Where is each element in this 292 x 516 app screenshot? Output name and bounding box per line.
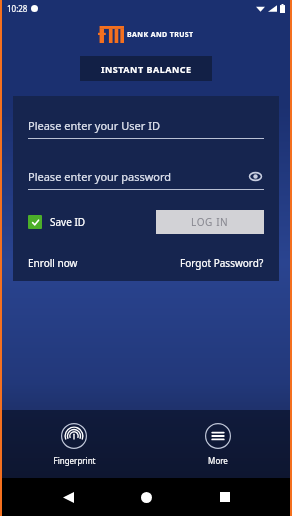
button[interactable]: Recent apps <box>212 484 238 510</box>
staticText: 10:28 <box>7 3 28 14</box>
button[interactable]: Home <box>133 484 159 510</box>
button[interactable]: Back <box>55 484 81 510</box>
button[interactable]: More options <box>146 410 290 478</box>
staticText: Enroll now <box>28 256 78 270</box>
button[interactable]: Forgot Password? <box>180 256 264 270</box>
staticText: Please enter your password <box>28 169 246 184</box>
button[interactable]: INSTANT BALANCE <box>80 56 212 81</box>
button[interactable]: Please enter your User ID <box>28 118 264 139</box>
button[interactable]: Fingerprint login <box>2 410 146 478</box>
staticText: INSTANT BALANCE <box>101 63 192 75</box>
staticText: Fingerprint <box>53 455 96 466</box>
button[interactable]: Please enter your password <box>28 167 264 190</box>
staticText: Save ID <box>50 215 86 229</box>
staticText: Forgot Password? <box>180 256 264 270</box>
button[interactable]: Show password <box>246 167 264 185</box>
button[interactable]: Enroll now <box>28 256 78 270</box>
staticText: More <box>208 455 228 466</box>
button[interactable]: Save ID <box>28 215 86 229</box>
staticText: LOG IN <box>191 215 229 229</box>
staticText: BANK AND TRUST <box>127 30 194 40</box>
staticText: Please enter your User ID <box>28 118 160 133</box>
button[interactable]: LOG IN <box>156 210 264 234</box>
